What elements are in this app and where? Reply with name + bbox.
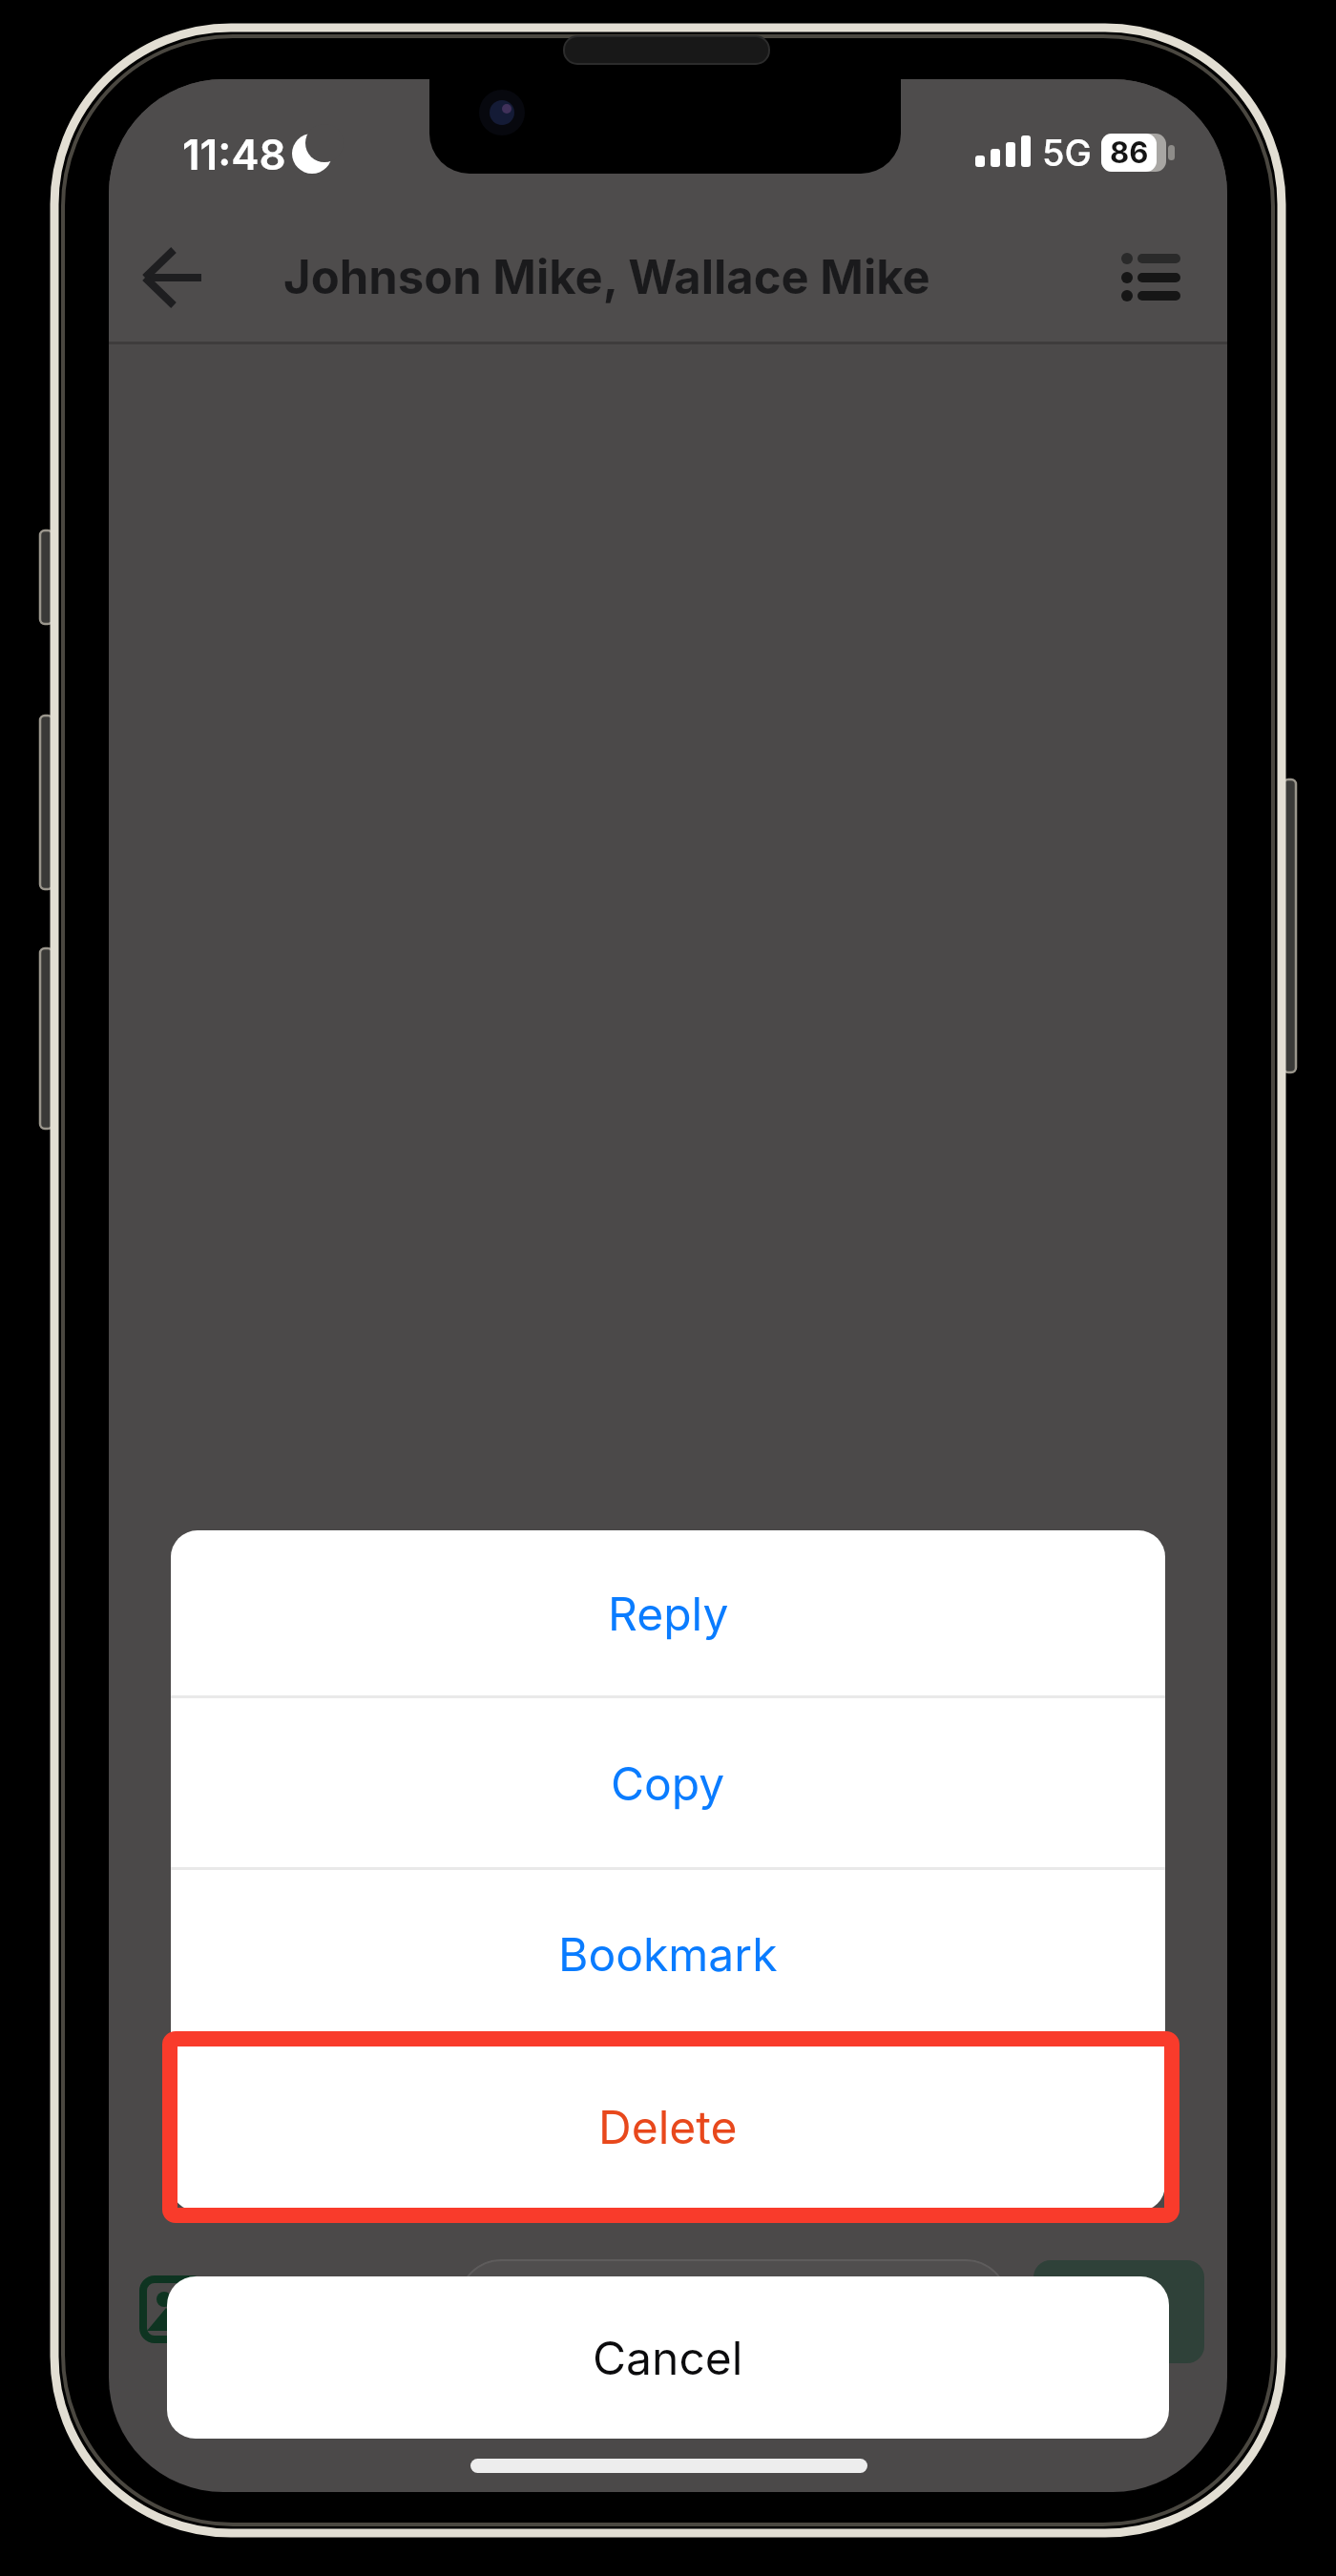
staticText: 5G bbox=[1042, 131, 1092, 175]
button[interactable]: Bookmark bbox=[171, 1870, 1165, 2038]
button[interactable]: Delete bbox=[171, 2041, 1165, 2212]
staticText: 86 bbox=[1110, 135, 1149, 171]
button[interactable]: Cancel bbox=[167, 2276, 1169, 2439]
button[interactable]: Copy bbox=[171, 1698, 1165, 1867]
button[interactable]: Reply bbox=[171, 1530, 1165, 1695]
button[interactable] bbox=[133, 249, 213, 306]
button[interactable] bbox=[1106, 241, 1198, 312]
staticText: Delete bbox=[598, 2099, 738, 2154]
staticText: Reply bbox=[608, 1586, 729, 1641]
staticText: Bookmark bbox=[558, 1926, 778, 1982]
staticText: 11:48 bbox=[182, 129, 286, 179]
staticText: Cancel bbox=[593, 2330, 743, 2385]
staticText: Johnson Mike, Wallace Mike bbox=[283, 249, 930, 305]
staticText: Copy bbox=[611, 1755, 725, 1811]
